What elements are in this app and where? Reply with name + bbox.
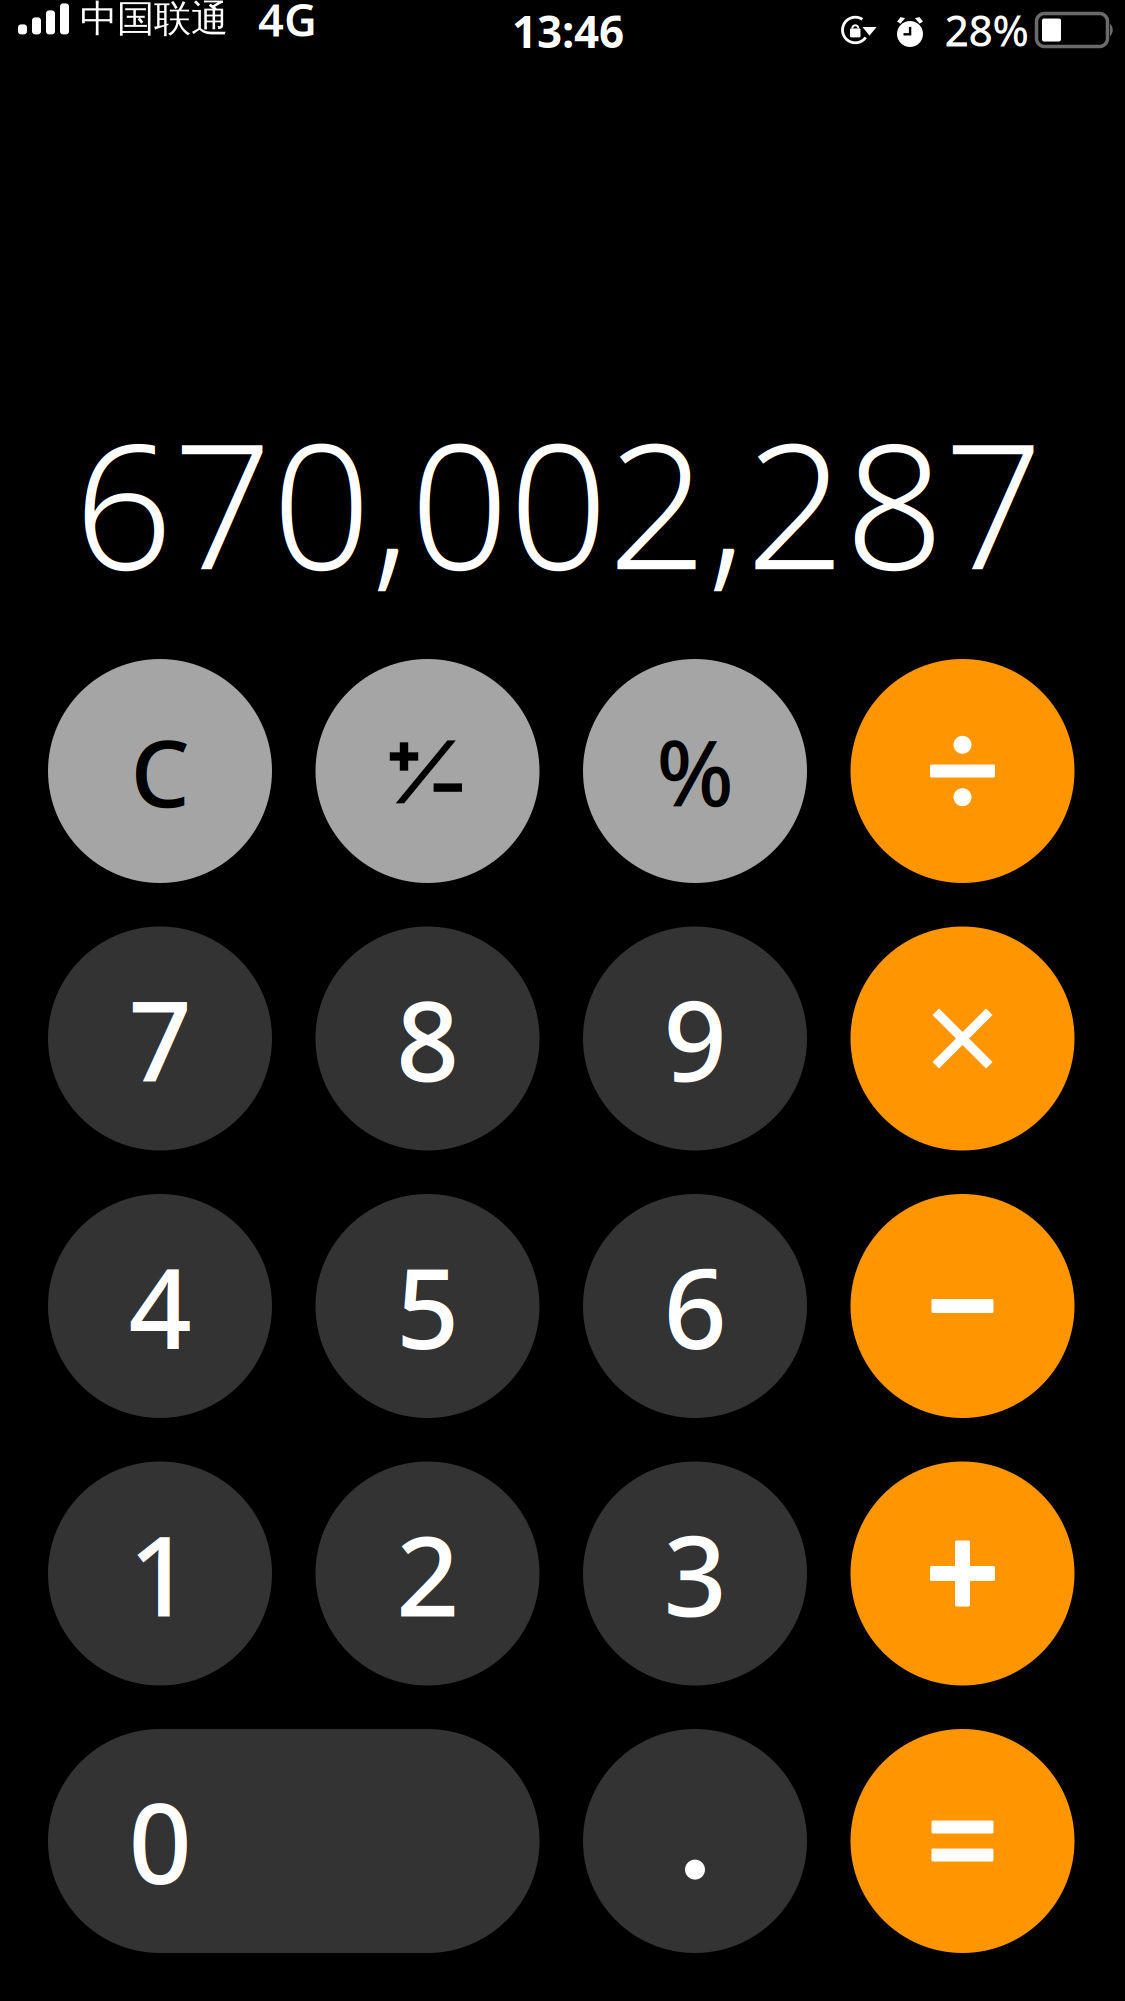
button[interactable]: 3: [583, 1461, 807, 1685]
button[interactable]: 2: [315, 1461, 539, 1685]
button[interactable]: 5: [315, 1194, 539, 1418]
button[interactable]: Add: [850, 1461, 1074, 1685]
button[interactable]: %: [583, 659, 807, 883]
button[interactable]: C: [48, 659, 272, 883]
staticText: 5: [396, 1232, 459, 1379]
button[interactable]: 8: [315, 926, 539, 1150]
staticText: 8: [396, 965, 459, 1112]
staticText: 2: [396, 1500, 459, 1647]
staticText: 13:46: [512, 2, 624, 60]
button[interactable]: Decimal point: [583, 1729, 807, 1953]
button[interactable]: Subtract: [850, 1194, 1074, 1418]
staticText: 3: [663, 1500, 726, 1647]
staticText: 28%: [944, 2, 1028, 58]
staticText: 0: [128, 1767, 191, 1914]
staticText: %: [656, 711, 733, 831]
button[interactable]: 1: [48, 1461, 272, 1685]
staticText: 1: [128, 1500, 191, 1647]
staticText: 4G: [258, 0, 317, 49]
button[interactable]: 6: [583, 1194, 807, 1418]
button[interactable]: Multiply: [850, 926, 1074, 1150]
button[interactable]: 0: [48, 1729, 539, 1953]
button[interactable]: 9: [583, 926, 807, 1150]
staticText: C: [130, 709, 189, 833]
staticText: 9: [663, 965, 726, 1112]
staticText: 6: [663, 1232, 726, 1379]
button[interactable]: Divide: [850, 659, 1074, 883]
button[interactable]: 4: [48, 1194, 272, 1418]
staticText: 4: [128, 1232, 191, 1379]
staticText: 670,002,287: [74, 387, 1043, 617]
button[interactable]: 7: [48, 926, 272, 1150]
button[interactable]: Equals: [850, 1729, 1074, 1953]
staticText: 中国联通: [80, 0, 228, 42]
button[interactable]: Toggle sign: [315, 659, 539, 883]
staticText: 7: [128, 965, 191, 1112]
